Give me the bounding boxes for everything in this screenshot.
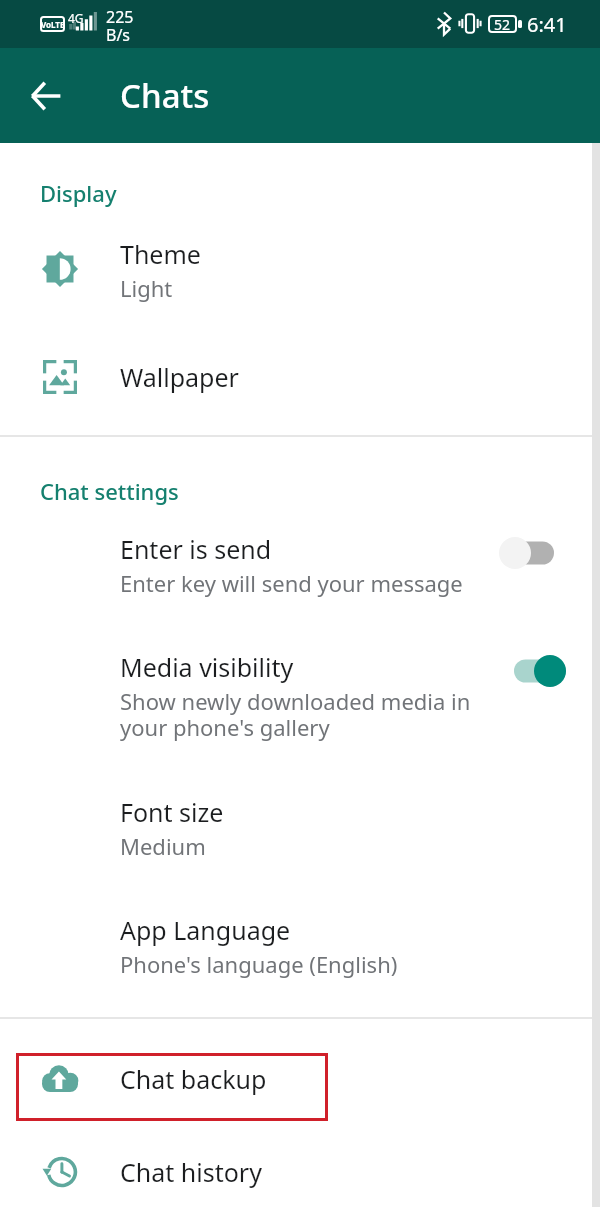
staticText: App Language <box>120 913 291 947</box>
staticText: Chat settings <box>40 476 179 506</box>
staticText: B/s <box>106 24 131 46</box>
staticText: Light <box>120 273 173 303</box>
button[interactable]: Toggle off <box>494 533 566 573</box>
button[interactable]: Theme <box>0 218 600 322</box>
staticText: 4G <box>68 10 84 26</box>
button[interactable]: Wallpaper <box>0 340 600 414</box>
button[interactable]: Chat backup <box>16 1053 328 1121</box>
button[interactable]: Back <box>14 64 78 128</box>
staticText: Font size <box>120 795 224 829</box>
staticText: Media visibility <box>120 650 294 684</box>
staticText: Enter key will send your message <box>120 568 463 598</box>
staticText: Theme <box>120 237 201 271</box>
button[interactable]: Font size <box>0 788 600 872</box>
staticText: Show newly downloaded media in your phon… <box>120 686 471 743</box>
button[interactable]: Media visibility <box>0 638 600 758</box>
staticText: 225 <box>106 6 134 28</box>
staticText: Phone's language (English) <box>120 949 398 979</box>
staticText: 6:41 <box>527 11 567 38</box>
staticText: Enter is send <box>120 532 272 566</box>
staticText: Chat history <box>120 1155 262 1189</box>
staticText: VoLTE <box>41 19 65 30</box>
staticText: 52 <box>494 15 511 33</box>
staticText: Chat backup <box>120 1062 267 1096</box>
staticText: Display <box>40 178 117 208</box>
button[interactable]: Chat history <box>0 1138 600 1207</box>
staticText: Medium <box>120 831 206 861</box>
staticText: Chats <box>120 73 210 118</box>
button[interactable]: Enter is send <box>0 518 600 610</box>
button[interactable]: App Language <box>0 906 600 990</box>
staticText: Wallpaper <box>120 360 239 394</box>
button[interactable]: Toggle on <box>494 651 566 691</box>
